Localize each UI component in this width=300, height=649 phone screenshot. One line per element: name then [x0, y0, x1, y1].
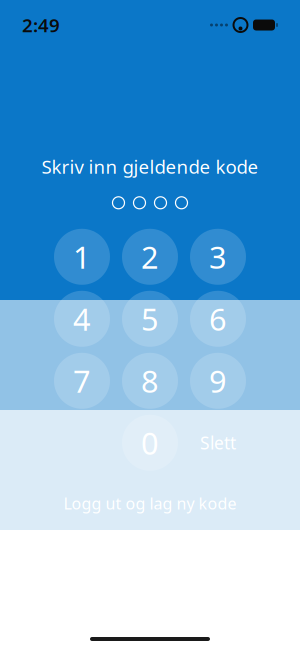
button[interactable]: 3 — [190, 229, 246, 285]
staticText: 6 — [209, 298, 227, 339]
staticText: 1 — [73, 236, 91, 277]
staticText: 9 — [209, 360, 227, 401]
staticText: 7 — [73, 360, 91, 401]
staticText: 0 — [141, 422, 159, 463]
button[interactable]: 6 — [190, 291, 246, 347]
button[interactable]: 1 — [54, 229, 110, 285]
button[interactable]: 4 — [54, 291, 110, 347]
button[interactable]: Slett — [190, 415, 246, 471]
button[interactable]: Logg ut og lag ny kode — [53, 489, 246, 518]
button[interactable]: 2 — [122, 229, 178, 285]
staticText: 2:49 — [22, 13, 60, 37]
button[interactable]: 7 — [54, 353, 110, 409]
staticText: Slett — [200, 431, 236, 454]
button[interactable]: 9 — [190, 353, 246, 409]
staticText: Skriv inn gjeldende kode — [41, 154, 258, 179]
button[interactable]: 8 — [122, 353, 178, 409]
staticText: 5 — [141, 298, 159, 339]
button[interactable]: 0 — [122, 415, 178, 471]
button[interactable]: 5 — [122, 291, 178, 347]
staticText: 3 — [209, 236, 227, 277]
staticText: 2 — [141, 236, 159, 277]
staticText: 4 — [73, 298, 91, 339]
staticText: Logg ut og lag ny kode — [63, 493, 236, 514]
staticText: 8 — [141, 360, 159, 401]
